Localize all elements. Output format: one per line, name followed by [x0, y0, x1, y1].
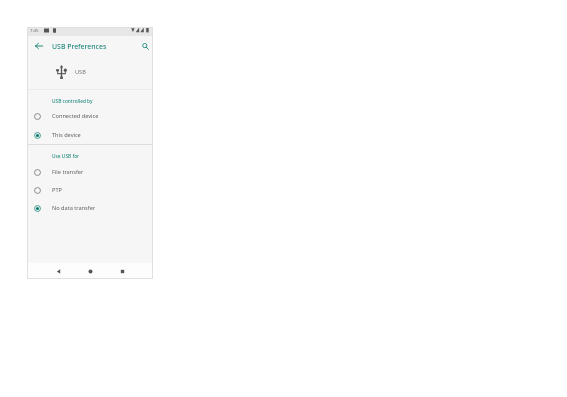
staticText: PTP: [52, 186, 62, 194]
staticText: No data transfer: [52, 204, 96, 212]
button[interactable]: Home: [80, 263, 100, 279]
button[interactable]: No data transfer: [27, 199, 153, 217]
button[interactable]: Search: [137, 38, 153, 54]
staticText: File transfer: [52, 168, 84, 176]
staticText: USB controlled by: [52, 98, 93, 105]
staticText: Use USB for: [52, 153, 80, 160]
button[interactable]: Back: [48, 263, 68, 279]
button[interactable]: File transfer: [27, 163, 153, 181]
staticText: 7:45: [30, 27, 39, 33]
staticText: USB: [75, 68, 86, 76]
staticText: This device: [52, 131, 81, 139]
button[interactable]: This device: [27, 126, 153, 144]
button[interactable]: PTP: [27, 181, 153, 199]
button[interactable]: Connected device: [27, 107, 153, 125]
staticText: USB Preferences: [52, 42, 107, 51]
staticText: Connected device: [52, 112, 99, 120]
button[interactable]: Recent apps: [112, 263, 132, 279]
button[interactable]: Back: [31, 38, 47, 54]
